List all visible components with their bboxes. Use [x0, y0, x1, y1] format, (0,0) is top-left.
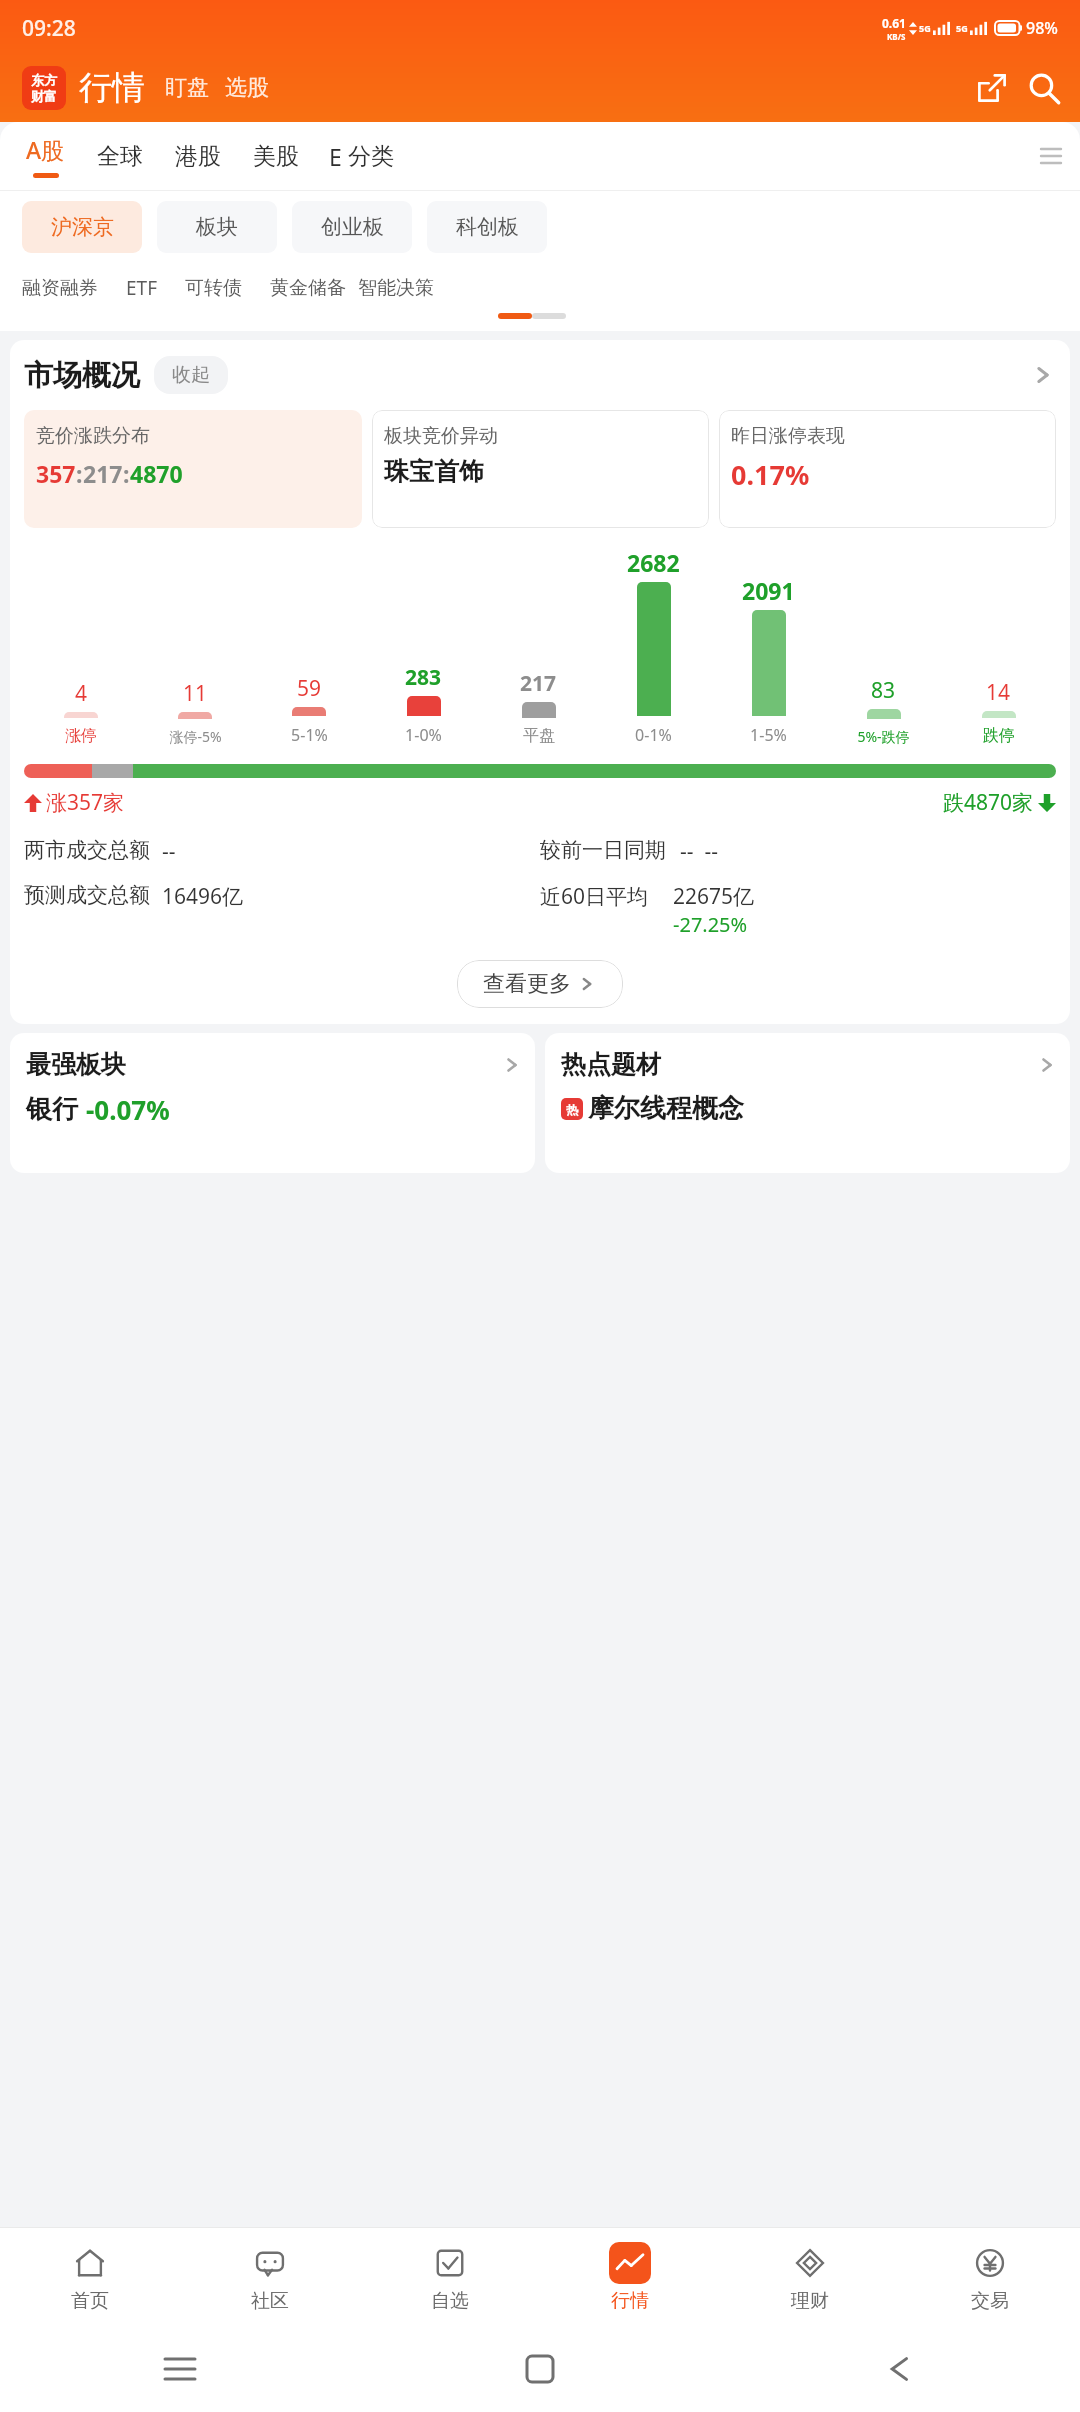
staticText: 板块 [196, 214, 238, 240]
staticText: 摩尔线程概念 [588, 1092, 744, 1125]
staticText: 东方 [31, 72, 57, 88]
button[interactable]: 行情 [79, 67, 145, 109]
staticText: 2682 [627, 547, 680, 578]
staticText: 理财 [791, 2289, 829, 2313]
staticText: 0.17% [731, 456, 810, 493]
staticText: 22675亿 [673, 882, 755, 911]
staticText: 5G [919, 22, 931, 34]
staticText: -27.25% [673, 911, 748, 938]
staticText: -0.07% [86, 1092, 170, 1127]
staticText: 热 [566, 1102, 578, 1117]
button[interactable]: ETF [126, 275, 157, 301]
staticText: 社区 [251, 2289, 289, 2313]
staticText: 首页 [71, 2289, 109, 2313]
staticText: KB/S [887, 31, 906, 42]
staticText: 59 [297, 674, 322, 703]
staticText: 沪深京 [51, 214, 114, 240]
staticText: 5%-跌停 [857, 727, 910, 746]
button[interactable]: 沪深京 [22, 201, 142, 253]
staticText: 1-5% [750, 724, 787, 746]
button[interactable]: 融资融券 [22, 276, 98, 300]
staticText: 科创板 [456, 214, 519, 240]
staticText: 4 [75, 679, 88, 708]
staticText: 自选 [431, 2289, 469, 2313]
staticText: 5-1% [291, 724, 328, 746]
staticText: 16496亿 [162, 882, 244, 911]
staticText: A股 [26, 134, 65, 165]
button[interactable]: 板块 [157, 201, 277, 253]
staticText: 行情 [611, 2289, 649, 2313]
button[interactable]: 分类 [348, 142, 394, 171]
button[interactable]: 交易 [900, 2228, 1080, 2326]
staticText: 跌4870家 [943, 788, 1034, 817]
staticText: 14 [986, 678, 1011, 707]
button[interactable]: 全球 [97, 142, 143, 171]
staticText: 涨停-5% [169, 727, 222, 746]
button[interactable]: A股 [26, 134, 65, 178]
button[interactable]: 竞价涨跌分布 [24, 410, 362, 528]
staticText: -- [162, 837, 176, 866]
staticText: : [123, 458, 130, 489]
button[interactable]: 昨日涨停表现 [719, 410, 1056, 528]
staticText: 跌停 [983, 726, 1015, 746]
staticText: 热点题材 [561, 1049, 661, 1080]
button[interactable]: 社区 [180, 2228, 360, 2326]
button[interactable]: Share [976, 72, 1008, 104]
staticText: 5G [956, 22, 968, 34]
button[interactable]: 收起 [172, 363, 210, 387]
staticText: 两市成交总额 [24, 837, 150, 863]
staticText: 98% [1026, 17, 1058, 39]
staticText: 板块竞价异动 [384, 424, 498, 448]
staticText: -- -- [680, 837, 718, 866]
button[interactable]: 港股 [175, 142, 221, 171]
staticText: 平盘 [523, 726, 555, 746]
staticText: 2091 [742, 575, 795, 606]
button[interactable]: 理财 [720, 2228, 900, 2326]
staticText: 较前一日同期 [540, 837, 666, 863]
button[interactable]: 黄金储备 [270, 276, 346, 300]
button[interactable]: 市场概况 [24, 356, 1056, 394]
staticText: 11 [183, 679, 208, 708]
button[interactable]: 板块竞价异动 [372, 410, 709, 528]
button[interactable]: 最强板块 [10, 1033, 535, 1173]
staticText: 83 [871, 676, 896, 705]
staticText: 查看更多 [483, 970, 571, 998]
staticText: 涨停 [65, 726, 97, 746]
staticText: 交易 [971, 2289, 1009, 2313]
button[interactable]: More tabs [1036, 141, 1066, 171]
staticText: 收起 [172, 363, 210, 387]
button[interactable]: 行情 [540, 2228, 720, 2326]
button[interactable]: Recents [0, 2326, 360, 2412]
button[interactable]: 创业板 [292, 201, 412, 253]
button[interactable]: Home [360, 2326, 720, 2412]
button[interactable]: 东方 [22, 66, 66, 110]
button[interactable]: 盯盘 [165, 74, 209, 102]
button[interactable]: 智能决策 [358, 276, 434, 300]
staticText: 近60日平均 [540, 882, 649, 911]
staticText: 4870 [130, 458, 183, 489]
staticText: 竞价涨跌分布 [36, 424, 150, 448]
button[interactable]: 首页 [0, 2228, 180, 2326]
staticText: 0.61 [882, 15, 906, 31]
staticText: 283 [405, 663, 442, 692]
staticText: 217 [83, 458, 123, 489]
button[interactable]: 查看更多 [457, 960, 623, 1008]
button[interactable]: E [329, 141, 342, 172]
staticText: 0-1% [635, 724, 672, 746]
button[interactable]: 科创板 [427, 201, 547, 253]
button[interactable]: 美股 [253, 142, 299, 171]
staticText: 357 [36, 458, 76, 489]
staticText: : [76, 458, 83, 489]
staticText: 珠宝首饰 [384, 456, 484, 487]
staticText: 创业板 [321, 214, 384, 240]
button[interactable]: 选股 [225, 74, 269, 102]
button[interactable]: 热点题材 [545, 1033, 1070, 1173]
staticText: 217 [520, 669, 557, 698]
staticText: 09:28 [22, 14, 76, 43]
button[interactable]: Back [720, 2326, 1080, 2412]
staticText: 预测成交总额 [24, 882, 150, 908]
button[interactable]: 自选 [360, 2228, 540, 2326]
staticText: 市场概况 [24, 357, 140, 394]
button[interactable]: 可转债 [185, 276, 242, 300]
button[interactable]: Search [1028, 72, 1060, 104]
